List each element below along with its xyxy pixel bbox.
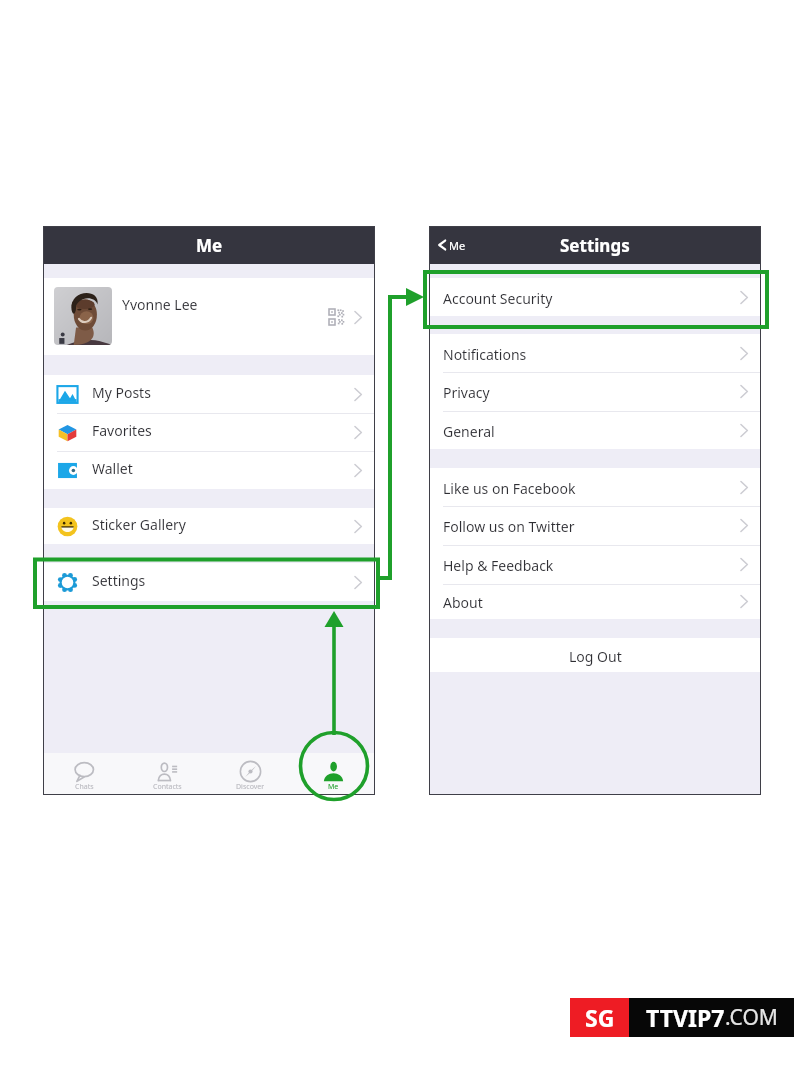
- staticText: TTVIP7: [646, 1002, 725, 1033]
- button[interactable]: Settings: [43, 563, 375, 601]
- button[interactable]: Privacy: [429, 372, 761, 411]
- staticText: Privacy: [443, 383, 490, 402]
- button[interactable]: Log Out: [429, 638, 761, 672]
- button[interactable]: Yvonne Lee: [43, 278, 375, 355]
- button[interactable]: Like us on Facebook: [429, 468, 761, 506]
- button[interactable]: Favorites: [43, 413, 375, 451]
- button[interactable]: Sticker Gallery: [43, 508, 375, 544]
- staticText: Me: [449, 238, 466, 253]
- button[interactable]: General: [429, 411, 761, 449]
- staticText: Account Security: [443, 289, 553, 308]
- staticText: Like us on Facebook: [443, 479, 576, 498]
- staticText: Yvonne Lee: [122, 295, 198, 314]
- staticText: Discover: [236, 782, 265, 792]
- button[interactable]: Wallet: [43, 451, 375, 489]
- staticText: SG: [585, 1002, 615, 1033]
- button[interactable]: Notifications: [429, 334, 761, 372]
- button[interactable]: Help & Feedback: [429, 545, 761, 584]
- staticText: Settings: [560, 234, 630, 257]
- staticText: Favorites: [92, 421, 152, 440]
- button[interactable]: Contacts: [126, 753, 209, 795]
- button[interactable]: Back: [437, 226, 466, 264]
- staticText: Notifications: [443, 345, 527, 364]
- button[interactable]: Chats: [43, 753, 126, 795]
- staticText: Follow us on Twitter: [443, 517, 575, 536]
- button[interactable]: My QR code: [329, 309, 345, 325]
- staticText: Settings: [92, 571, 146, 590]
- staticText: Contacts: [153, 782, 182, 792]
- staticText: Me: [328, 782, 339, 792]
- staticText: Wallet: [92, 459, 133, 478]
- button[interactable]: Me: [292, 753, 375, 795]
- staticText: .COM: [725, 1003, 778, 1032]
- staticText: About: [443, 593, 483, 612]
- staticText: My Posts: [92, 383, 151, 402]
- other: Back: [437, 237, 447, 253]
- button[interactable]: Discover: [209, 753, 292, 795]
- staticText: Me: [196, 234, 223, 257]
- button[interactable]: Follow us on Twitter: [429, 506, 761, 545]
- button[interactable]: My Posts: [43, 375, 375, 413]
- button[interactable]: About: [429, 584, 761, 619]
- staticText: Log Out: [569, 647, 622, 666]
- staticText: General: [443, 422, 495, 441]
- staticText: Chats: [75, 782, 94, 792]
- staticText: Sticker Gallery: [92, 515, 186, 534]
- staticText: Help & Feedback: [443, 556, 554, 575]
- button[interactable]: Account Security: [429, 278, 761, 316]
